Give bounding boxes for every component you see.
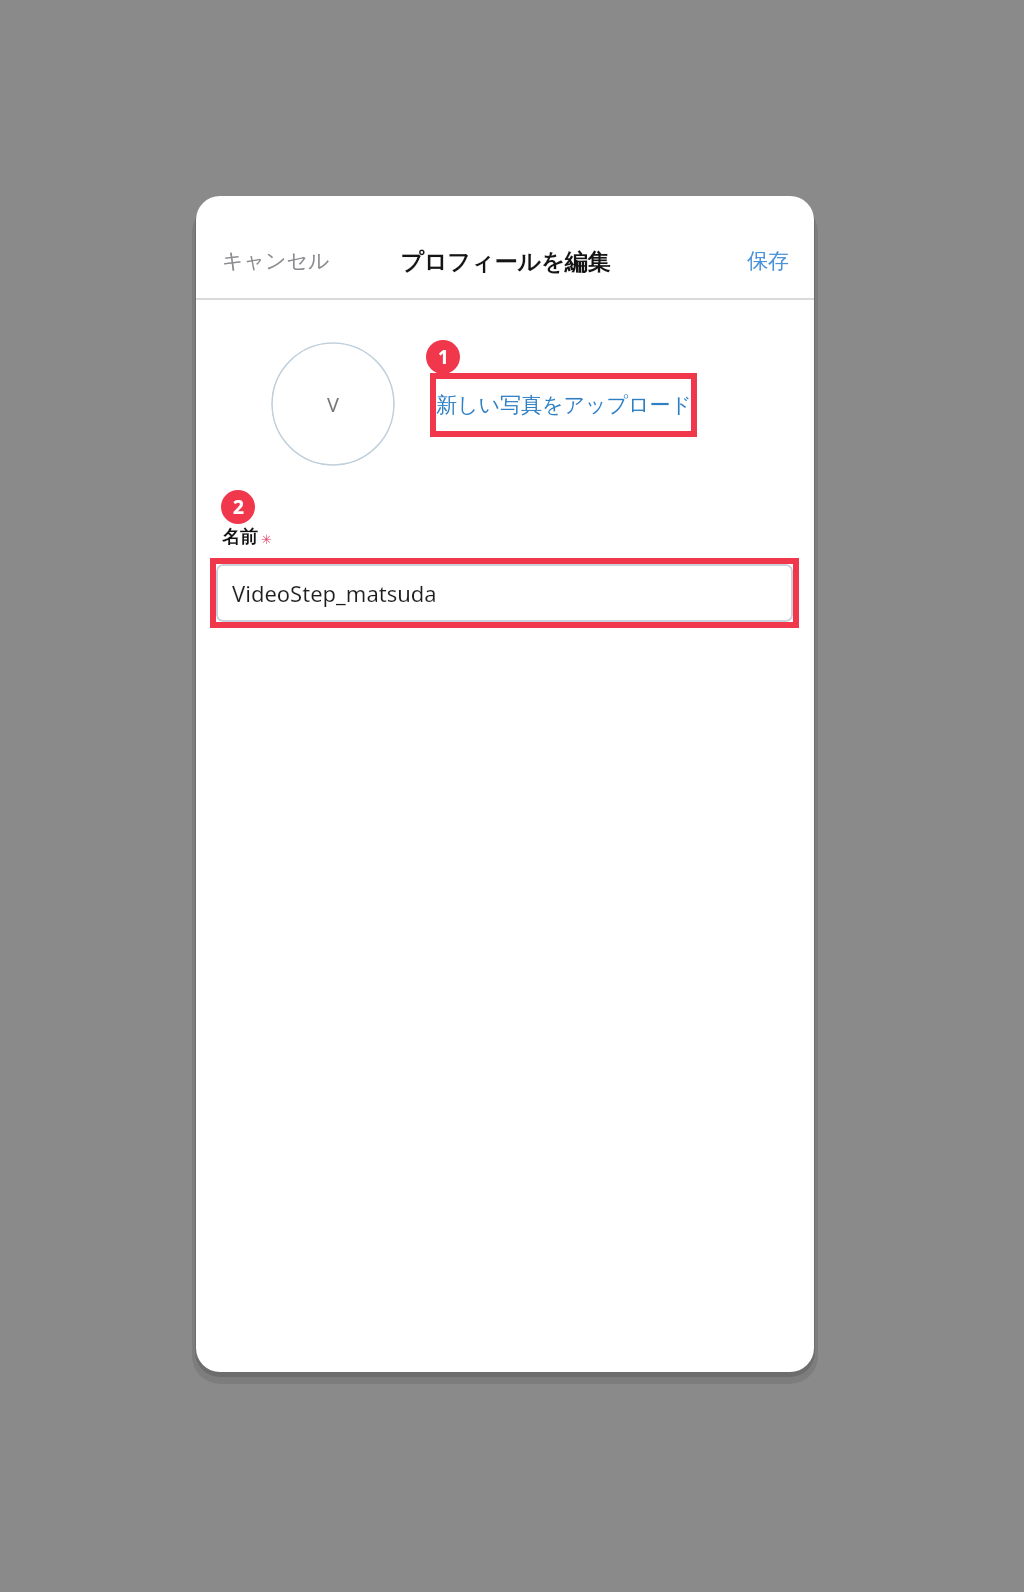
staticText: 1 <box>438 344 449 370</box>
staticText: 2 <box>233 494 244 520</box>
staticText: 名前 <box>222 526 258 549</box>
button[interactable]: 保存 <box>735 240 801 282</box>
staticText: ✳ <box>261 532 272 547</box>
staticText: 保存 <box>747 248 789 274</box>
staticText: 新しい写真をアップロード <box>436 392 692 418</box>
staticText: キャンセル <box>222 248 330 274</box>
staticText: V <box>327 391 339 418</box>
button[interactable]: VideoStep_matsuda <box>216 564 793 622</box>
button[interactable]: キャンセル <box>210 240 342 282</box>
button[interactable]: プロフィール写真 <box>271 342 395 466</box>
staticText: プロフィールを編集 <box>400 248 611 277</box>
staticText: VideoStep_matsuda <box>232 578 437 608</box>
button[interactable]: 新しい写真をアップロード <box>430 373 697 437</box>
